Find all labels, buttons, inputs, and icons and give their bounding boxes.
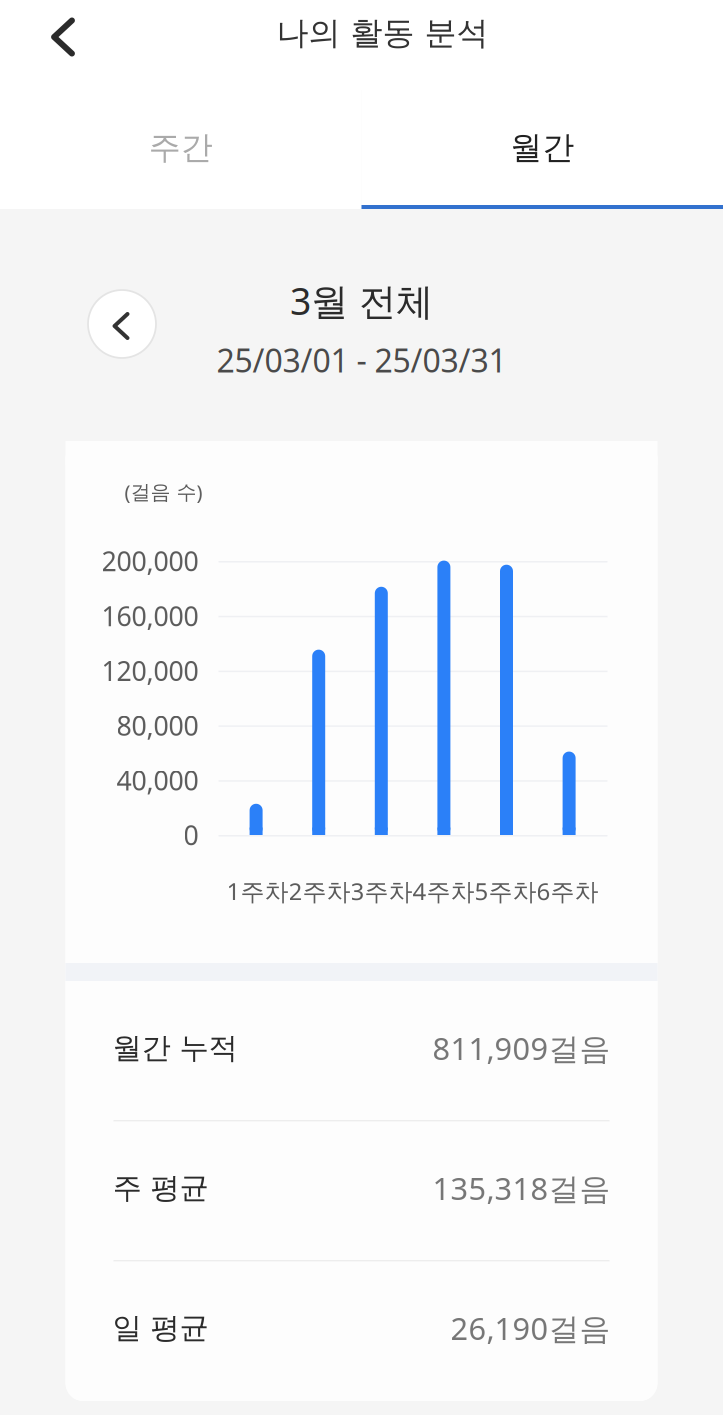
staticText: 1주차	[227, 875, 289, 907]
staticText: 3월 전체	[290, 275, 433, 326]
staticText: 2주차	[289, 875, 351, 907]
button[interactable]: 주간	[0, 90, 361, 205]
staticText: 80,000	[116, 707, 198, 743]
staticText: 135,318걸음	[432, 1167, 610, 1209]
staticText: (걸음 수)	[124, 478, 202, 505]
staticText: 200,000	[101, 543, 198, 579]
staticText: 6주차	[537, 875, 599, 907]
button[interactable]: 월간	[361, 90, 723, 205]
staticText: 4주차	[413, 875, 475, 907]
staticText: 811,909걸음	[432, 1027, 610, 1069]
button[interactable]: 일 평균	[65, 1261, 657, 1401]
staticText: 주 평균	[112, 1169, 208, 1206]
staticText: 월간	[510, 127, 574, 168]
button[interactable]: 주 평균	[65, 1121, 657, 1261]
staticText: 0	[183, 817, 198, 853]
staticText: 120,000	[101, 652, 198, 689]
staticText: 40,000	[116, 762, 198, 798]
button[interactable]: Previous month	[88, 290, 156, 358]
staticText: 주간	[149, 127, 213, 168]
button[interactable]: 월간 누적	[65, 981, 657, 1121]
staticText: 일 평균	[112, 1309, 208, 1346]
staticText: 3주차	[351, 875, 413, 907]
button[interactable]: Back	[28, 2, 98, 72]
staticText: 월간 누적	[112, 1029, 237, 1066]
staticText: 26,190걸음	[450, 1307, 610, 1349]
staticText: 25/03/01 - 25/03/31	[216, 338, 506, 382]
staticText: 160,000	[101, 598, 198, 634]
staticText: 나의 활동 분석	[276, 13, 488, 53]
staticText: 5주차	[475, 875, 537, 907]
